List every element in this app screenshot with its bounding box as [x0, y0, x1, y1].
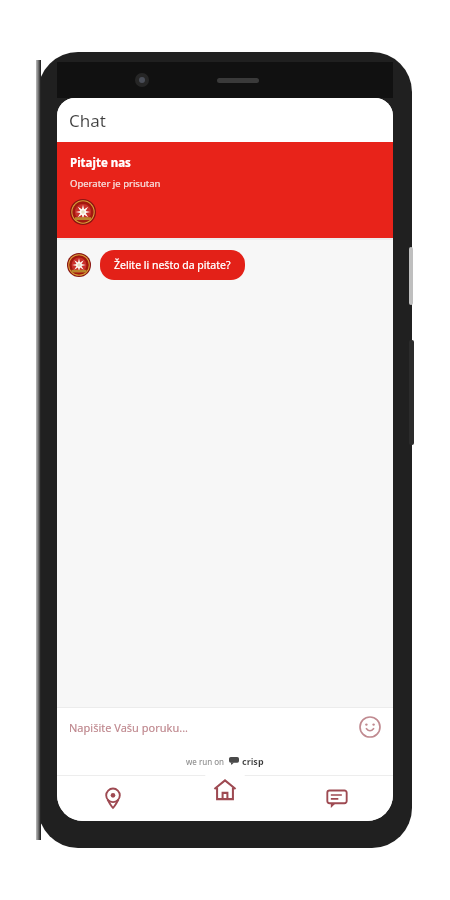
- staticText: Operater je prisutan: [70, 177, 161, 190]
- button[interactable]: Insert emoji: [359, 716, 381, 738]
- staticText: Napišite Vašu poruku...: [69, 720, 189, 735]
- button[interactable]: Home: [169, 775, 281, 821]
- button[interactable]: Locations: [57, 775, 169, 821]
- staticText: Chat: [69, 109, 106, 132]
- staticText: crisp: [242, 755, 264, 767]
- button[interactable]: Chat: [281, 775, 393, 821]
- staticText: Želite li nešto da pitate?: [114, 258, 231, 272]
- button[interactable]: Želite li nešto da pitate?: [100, 250, 245, 280]
- staticText: Pitajte nas: [70, 155, 131, 171]
- button[interactable]: Pitajte nas: [57, 142, 393, 238]
- staticText: we run on: [186, 756, 224, 767]
